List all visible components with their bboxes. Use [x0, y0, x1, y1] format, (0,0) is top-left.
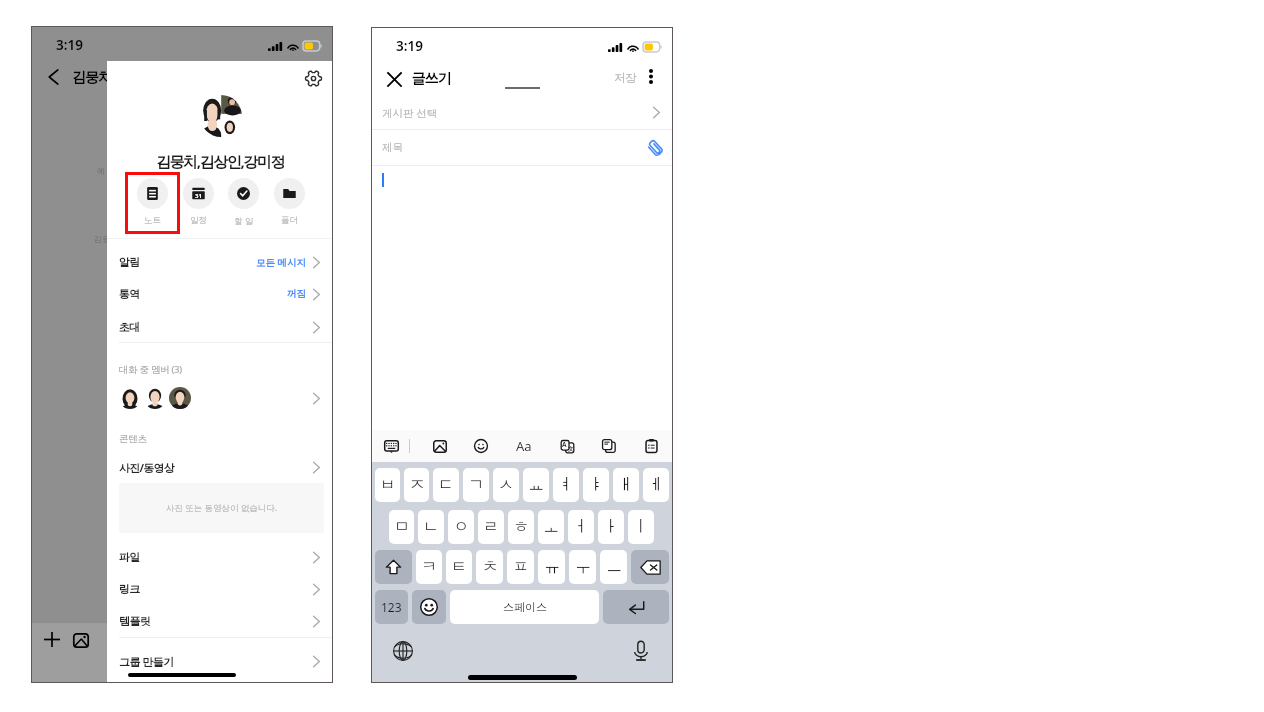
- button[interactable]: ㅊ: [476, 550, 503, 584]
- button[interactable]: ㄷ: [433, 468, 459, 502]
- button[interactable]: Change language: [392, 640, 414, 662]
- button[interactable]: Copy: [598, 435, 620, 457]
- staticText: 템플릿: [119, 614, 151, 628]
- staticText: 글쓰기: [412, 70, 451, 88]
- button[interactable]: 할 일: [216, 172, 271, 227]
- staticText: 초대: [119, 320, 140, 334]
- staticText: 할 일: [234, 215, 254, 227]
- button[interactable]: Clipboard: [640, 435, 662, 457]
- button[interactable]: More options: [642, 67, 660, 85]
- button[interactable]: ㄴ: [418, 510, 444, 544]
- button[interactable]: ㅐ: [613, 468, 639, 502]
- button[interactable]: ㅗ: [538, 510, 564, 544]
- button[interactable]: Voice input: [630, 640, 652, 662]
- button[interactable]: 123: [375, 590, 408, 624]
- button[interactable]: Aa: [512, 434, 536, 458]
- button[interactable]: ㅈ: [404, 468, 429, 502]
- staticText: ㄱ: [468, 475, 484, 495]
- button[interactable]: [631, 550, 669, 584]
- button[interactable]: ㅑ: [583, 468, 609, 502]
- staticText: Aa: [516, 437, 532, 455]
- button[interactable]: Translate: [556, 435, 578, 457]
- button[interactable]: [107, 385, 333, 411]
- staticText: ㅊ: [482, 557, 498, 577]
- button[interactable]: Attach file: [645, 138, 665, 158]
- staticText: ㅈ: [409, 475, 425, 495]
- button[interactable]: 스페이스: [450, 590, 599, 624]
- staticText: ㅏ: [603, 517, 619, 537]
- button[interactable]: [375, 550, 412, 584]
- staticText: ㄴ: [423, 517, 439, 537]
- staticText: 노트: [144, 215, 161, 226]
- button[interactable]: 초대: [107, 311, 333, 343]
- button[interactable]: ㅣ: [628, 510, 654, 544]
- button[interactable]: ㅡ: [600, 550, 627, 584]
- staticText: 꺼짐: [287, 288, 306, 300]
- button[interactable]: 노트: [125, 172, 180, 226]
- staticText: 文: [568, 445, 574, 453]
- staticText: ㅛ: [528, 475, 544, 495]
- button[interactable]: 알림: [107, 246, 333, 278]
- button[interactable]: 31: [171, 172, 226, 226]
- button[interactable]: 폴더: [262, 172, 317, 226]
- staticText: ㅂ: [380, 475, 396, 495]
- staticText: 게시판 선택: [382, 106, 438, 120]
- button[interactable]: ㅎ: [508, 510, 534, 544]
- staticText: 사진 또는 동영상이 없습니다.: [166, 502, 277, 514]
- button[interactable]: 저장: [611, 67, 639, 89]
- button[interactable]: ㅔ: [643, 468, 669, 502]
- staticText: A: [562, 440, 567, 449]
- staticText: ㅎ: [513, 517, 529, 537]
- staticText: 알림: [119, 255, 140, 269]
- button[interactable]: 사진/동영상: [107, 456, 333, 478]
- staticText: ㅡ: [606, 557, 622, 577]
- button[interactable]: 템플릿: [107, 605, 333, 637]
- button[interactable]: ㅍ: [507, 550, 534, 584]
- button[interactable]: 게시판 선택: [371, 96, 673, 129]
- staticText: ㅇ: [453, 517, 469, 537]
- staticText: ㅍ: [513, 557, 529, 577]
- button[interactable]: Settings: [301, 66, 325, 90]
- button[interactable]: ㅓ: [568, 510, 594, 544]
- button[interactable]: ㄱ: [463, 468, 489, 502]
- staticText: 저장: [614, 71, 636, 85]
- button[interactable]: ㅇ: [448, 510, 474, 544]
- button[interactable]: Insert image: [429, 435, 451, 457]
- staticText: ㅗ: [543, 517, 559, 537]
- staticText: ㅠ: [544, 557, 560, 577]
- staticText: ㅋ: [421, 557, 437, 577]
- button[interactable]: ㅋ: [416, 550, 442, 584]
- button[interactable]: ㅛ: [523, 468, 549, 502]
- button[interactable]: ㅕ: [553, 468, 579, 502]
- button[interactable]: 파일: [107, 541, 333, 573]
- button[interactable]: ㅠ: [538, 550, 565, 584]
- button[interactable]: Emoji: [470, 435, 492, 457]
- staticText: 사진/동영상: [119, 460, 175, 475]
- button[interactable]: ㅂ: [375, 468, 400, 502]
- staticText: ㅜ: [575, 557, 591, 577]
- button[interactable]: 그룹 만들기: [107, 645, 333, 677]
- button[interactable]: ㅁ: [389, 510, 414, 544]
- staticText: ㅕ: [558, 475, 574, 495]
- button[interactable]: ㅅ: [493, 468, 519, 502]
- staticText: 스페이스: [503, 600, 547, 614]
- button[interactable]: Close: [384, 69, 404, 89]
- button[interactable]: ㄹ: [478, 510, 504, 544]
- staticText: ㅓ: [573, 517, 589, 537]
- staticText: 3:19: [56, 36, 83, 54]
- staticText: 파일: [119, 550, 140, 564]
- staticText: 콘텐츠: [119, 433, 147, 445]
- staticText: 폴더: [281, 215, 298, 226]
- button[interactable]: ㅏ: [598, 510, 624, 544]
- button[interactable]: Keyboard: [380, 435, 402, 457]
- button[interactable]: [412, 590, 446, 624]
- button[interactable]: ㅌ: [446, 550, 472, 584]
- staticText: 3:19: [396, 37, 423, 55]
- button[interactable]: [603, 590, 669, 624]
- staticText: ㅌ: [451, 557, 467, 577]
- button[interactable]: ㅜ: [569, 550, 596, 584]
- button[interactable]: 통역: [107, 278, 333, 310]
- button[interactable]: 링크: [107, 573, 333, 605]
- staticText: 링크: [119, 582, 140, 596]
- staticText: ㄷ: [438, 475, 454, 495]
